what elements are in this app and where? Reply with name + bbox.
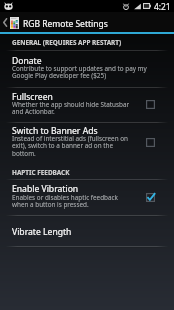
button[interactable]: Enabled checkbox bbox=[141, 188, 159, 206]
staticText: Enables or disables haptic feedback when… bbox=[12, 193, 157, 209]
staticText: HAPTIC FEEDBACK bbox=[12, 168, 70, 177]
button[interactable]: Disabled checkbox bbox=[141, 133, 159, 151]
button[interactable] bbox=[0, 51, 174, 86]
button[interactable] bbox=[0, 123, 174, 167]
staticText: Switch to Banner Ads bbox=[12, 125, 98, 137]
staticText: Contribute to support updates and to pay… bbox=[12, 64, 157, 80]
staticText: GENERAL (REQUIRES APP RESTART) bbox=[12, 38, 122, 47]
staticText: Vibrate Length bbox=[12, 226, 72, 238]
button[interactable]: Navigate up bbox=[0, 12, 9, 32]
staticText: RGB Remote Settings bbox=[23, 18, 108, 30]
staticText: 4:21 bbox=[154, 1, 171, 12]
staticText: Enable Vibration bbox=[12, 183, 79, 195]
staticText: Fullscreen bbox=[12, 91, 53, 103]
button[interactable] bbox=[0, 180, 174, 215]
button[interactable] bbox=[0, 216, 174, 246]
staticText: Whether the app should hide Statusbar an… bbox=[12, 100, 157, 116]
button[interactable] bbox=[0, 88, 174, 122]
staticText: Donate bbox=[12, 55, 42, 67]
staticText: Instead of interstitial ads (fullscreen … bbox=[12, 134, 157, 158]
button[interactable]: Disabled checkbox bbox=[141, 95, 159, 113]
